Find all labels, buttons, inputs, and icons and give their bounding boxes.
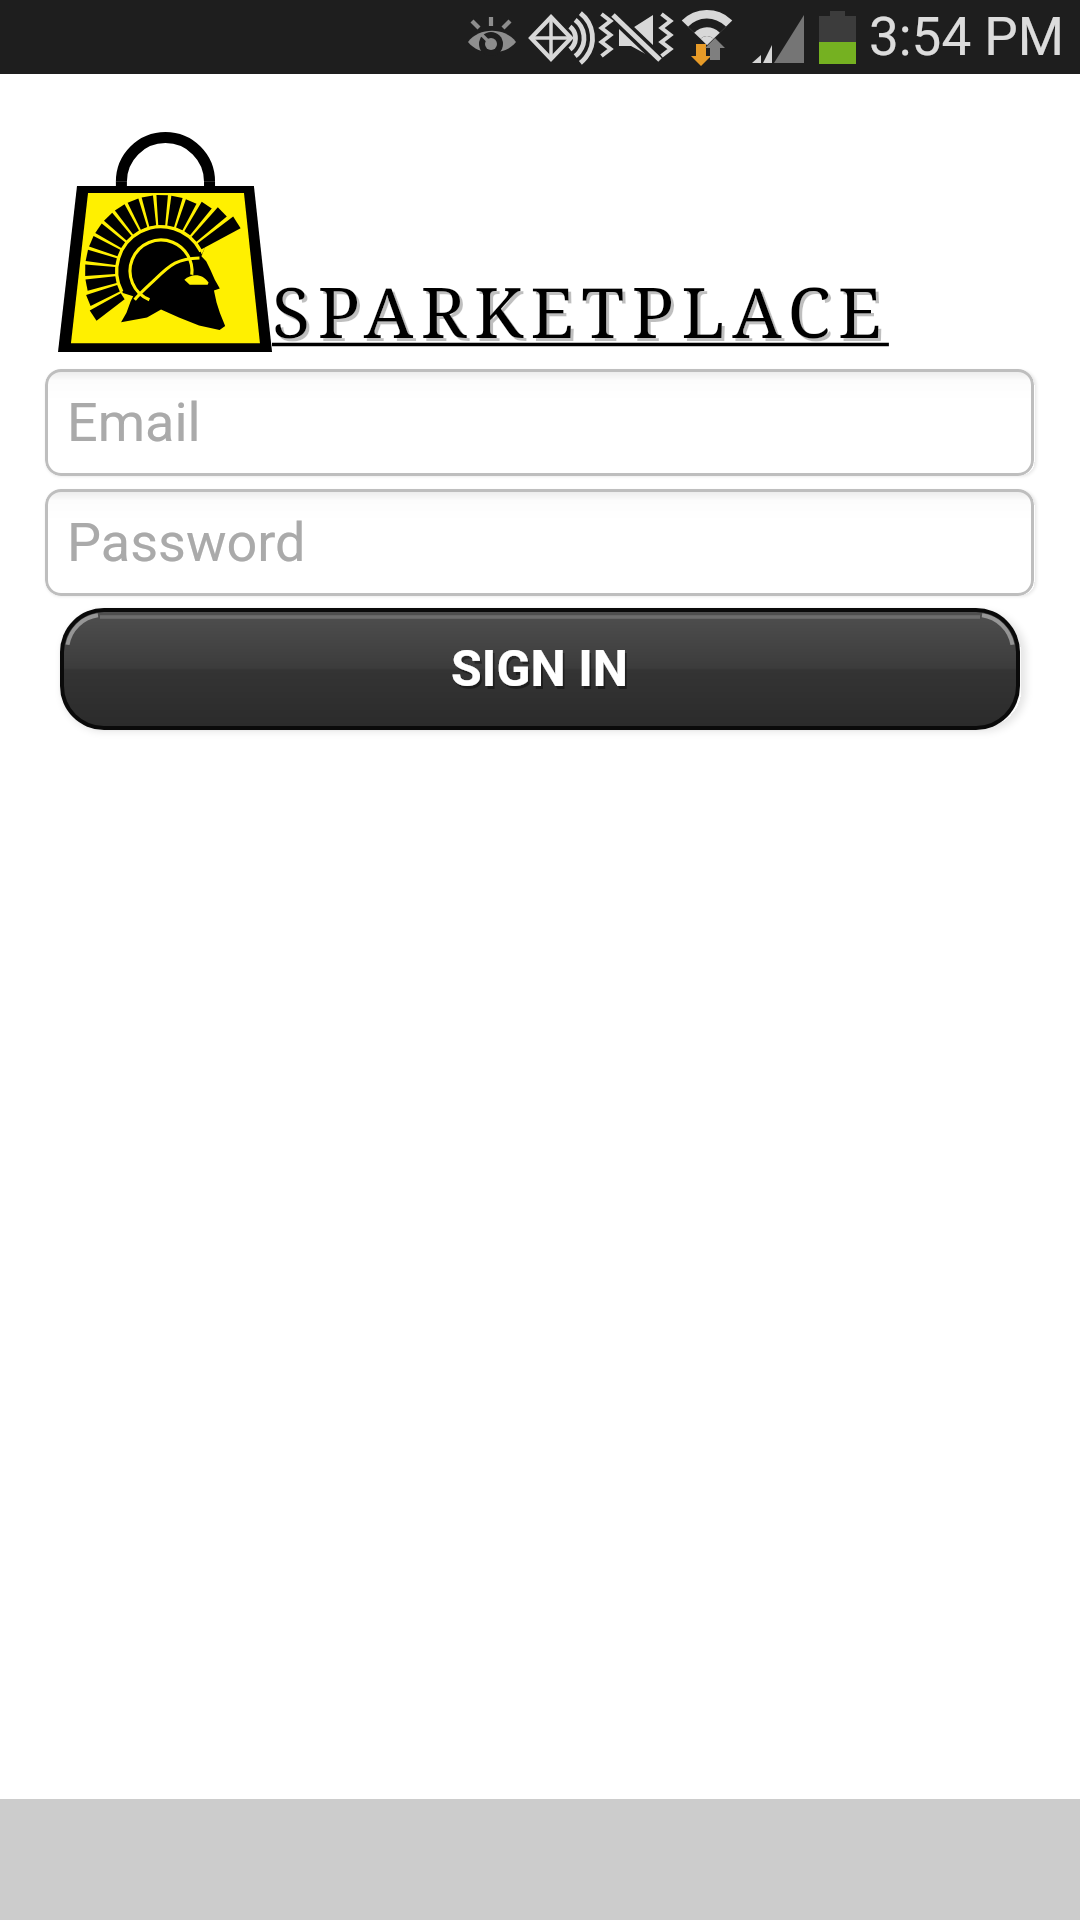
staticText: SIGN IN	[451, 640, 629, 699]
button[interactable]: Email	[45, 369, 1034, 476]
staticText: SIGN IN	[453, 643, 631, 702]
button[interactable]: SIGN IN	[64, 612, 1016, 726]
staticText: SPARKETPLACE	[272, 263, 889, 358]
button[interactable]: Password	[45, 489, 1034, 596]
staticText: 3:54 PM	[869, 6, 1065, 68]
other: Status icons	[0, 0, 1080, 74]
staticText: SPARKETPLACE	[275, 266, 892, 361]
other: Sparketplace logo	[58, 128, 274, 354]
staticText: Email	[67, 391, 201, 454]
staticText: Password	[67, 511, 306, 574]
